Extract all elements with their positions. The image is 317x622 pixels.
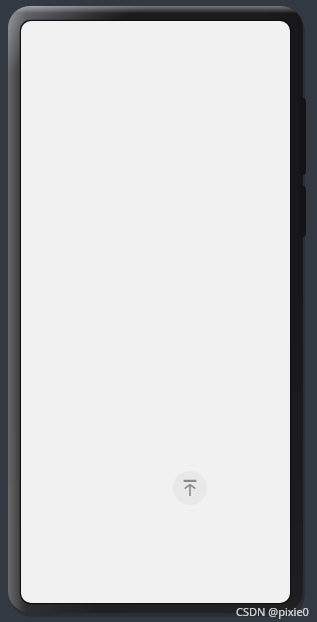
button[interactable]: Scroll to top — [173, 471, 207, 505]
staticText: CSDN @pixie0 — [236, 604, 309, 619]
